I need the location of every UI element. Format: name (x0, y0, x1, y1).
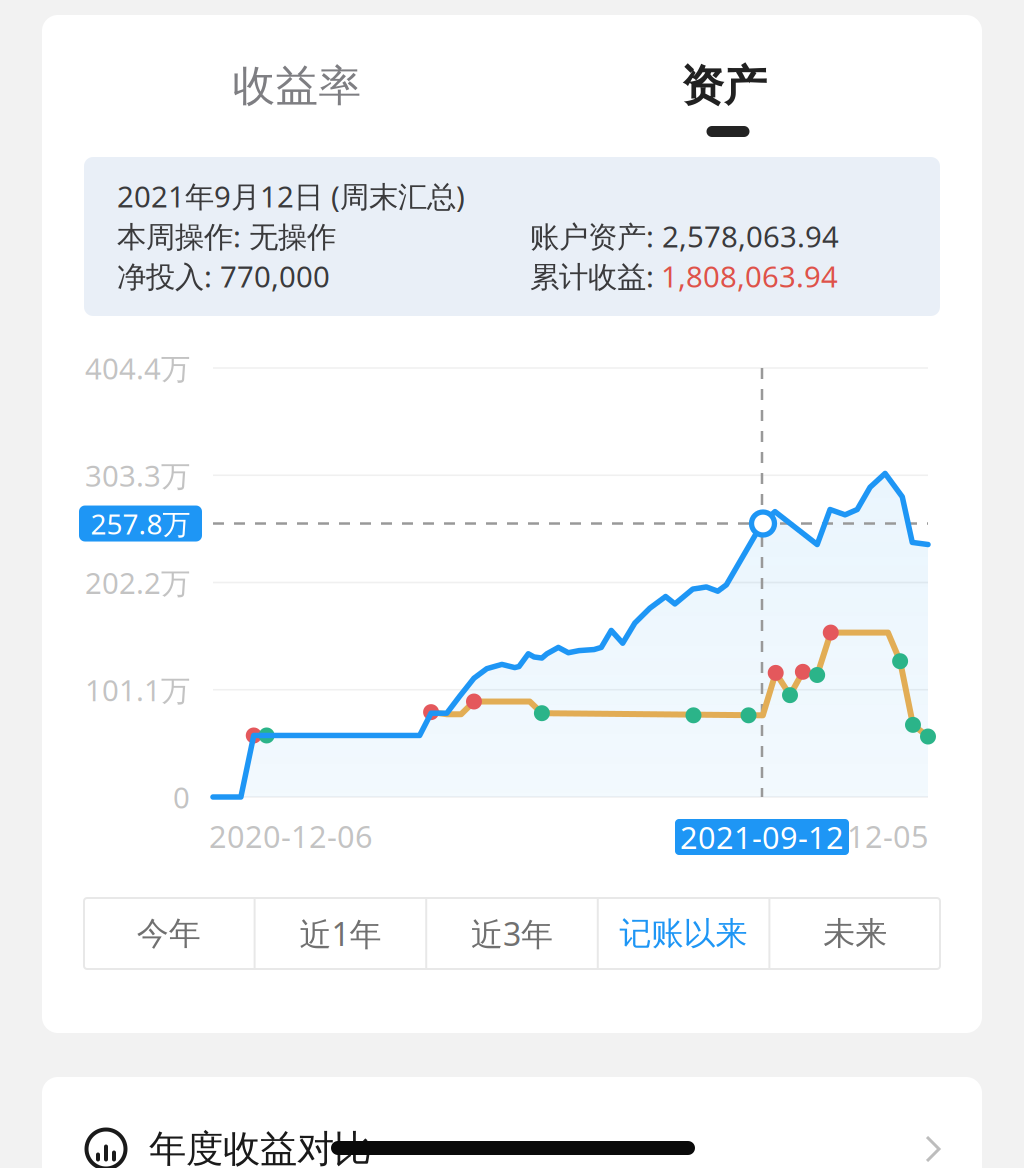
staticText: 本周操作: 无操作 (117, 216, 336, 255)
staticText: 账户资产: 2,578,063.94 (530, 216, 839, 255)
button[interactable]: 近1年 (256, 898, 425, 969)
staticText: 记账以来 (620, 914, 748, 953)
staticText: 年度收益对比 (149, 1126, 371, 1168)
staticText: 近3年 (471, 912, 553, 955)
staticText: 0 (173, 777, 190, 816)
staticText: 101.1万 (85, 670, 190, 709)
button[interactable]: 年度收益对比 (42, 1084, 982, 1168)
button[interactable]: 收益率 (147, 31, 447, 141)
staticText: 2020-12-06 (209, 816, 373, 856)
button[interactable]: 今年 (84, 898, 254, 969)
staticText: 303.3万 (85, 456, 190, 495)
button[interactable]: 资产 (594, 31, 854, 141)
staticText: 今年 (137, 914, 201, 953)
staticText: 2021-09-12 (680, 817, 844, 857)
staticText: 257.8万 (90, 505, 190, 542)
staticText: 资产 (681, 60, 767, 112)
staticText: 404.4万 (85, 348, 190, 387)
staticText: 收益率 (232, 60, 361, 112)
staticText: 202.2万 (85, 563, 190, 602)
button[interactable]: 未来 (770, 898, 940, 969)
staticText: 近1年 (299, 912, 381, 955)
staticText: 12-05 (847, 816, 929, 856)
staticText: 累计收益: (530, 256, 654, 295)
button[interactable]: 记账以来 (599, 898, 768, 969)
staticText: 1,808,063.94 (661, 256, 838, 295)
staticText: 2021年9月12日 (周末汇总) (117, 176, 465, 215)
button[interactable]: 近3年 (427, 898, 597, 969)
staticText: 未来 (823, 914, 887, 953)
staticText: 净投入: 770,000 (117, 256, 330, 295)
